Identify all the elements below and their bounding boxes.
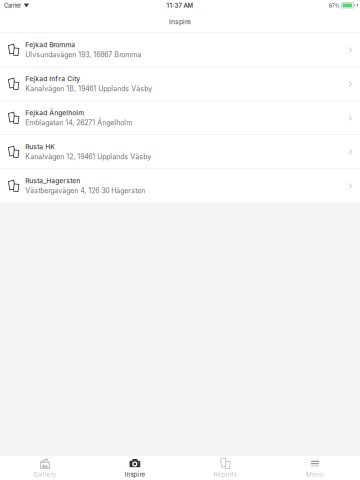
staticText: Rusta HK	[25, 143, 55, 151]
staticText: 87%	[329, 2, 340, 9]
staticText: Emblagatan 14, 26271 Ängelholm	[25, 118, 132, 127]
staticText: Fejkad Infra City	[25, 75, 80, 83]
button[interactable]: Fejkad Bromma	[0, 33, 360, 67]
button[interactable]: Rusta_Hagersten	[0, 169, 360, 203]
button[interactable]: Gallery	[0, 456, 90, 479]
button[interactable]: Inspire	[90, 456, 180, 479]
staticText: Västbergavägen 4, 126 30 Hägersten	[25, 186, 145, 195]
staticText: 11:37 AM	[166, 2, 193, 9]
button[interactable]: Reports	[180, 456, 270, 479]
staticText: Fejkad Ängelholm	[25, 109, 84, 117]
staticText: Inspire	[169, 18, 191, 26]
staticText: Carrier	[4, 2, 21, 9]
button[interactable]: Inspire	[0, 11, 360, 33]
staticText: Fejkad Bromma	[25, 41, 75, 49]
button[interactable]: Fejkad Ängelholm	[0, 101, 360, 135]
staticText: Gallery	[33, 471, 56, 478]
staticText: Reports	[213, 471, 236, 478]
staticText: Inspire	[124, 471, 145, 478]
button[interactable]: Rusta HK	[0, 135, 360, 169]
staticText: Menu	[306, 471, 324, 478]
button[interactable]: Fejkad Infra City	[0, 67, 360, 101]
staticText: Kanalvägen 12, 19461 Upplands Väsby	[25, 152, 151, 161]
staticText: Kanalvägen 1B, 19461 Upplands Väsby	[25, 84, 152, 93]
staticText: Rusta_Hagersten	[25, 177, 80, 185]
staticText: Ulvsundavägen 193, 16867 Bromma	[25, 50, 141, 59]
button[interactable]: Menu	[270, 456, 360, 479]
